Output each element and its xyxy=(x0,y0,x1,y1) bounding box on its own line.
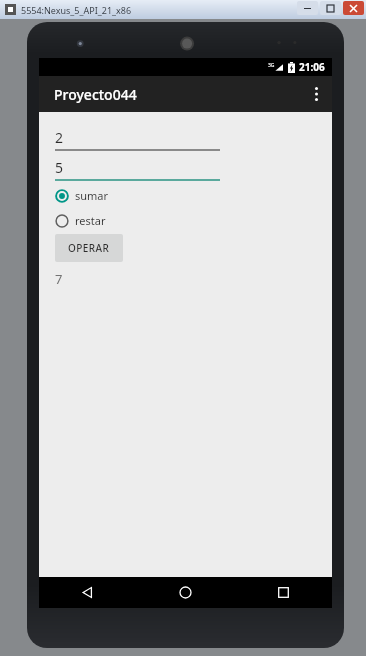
staticText: restar xyxy=(75,213,106,228)
button[interactable]: More options xyxy=(300,76,332,112)
staticText: 5554:Nexus_5_API_21_x86 xyxy=(21,4,132,16)
staticText: OPERAR xyxy=(68,241,110,255)
button[interactable]: Back xyxy=(39,577,136,608)
button[interactable]: OPERAR xyxy=(55,234,123,262)
staticText: 3G xyxy=(268,62,275,69)
button[interactable]: sumar xyxy=(55,186,109,205)
button[interactable]: Home xyxy=(136,577,234,608)
button[interactable]: restar xyxy=(55,211,106,230)
button[interactable]: Recent apps xyxy=(234,577,332,608)
button[interactable]: 5 xyxy=(55,158,220,181)
button[interactable] xyxy=(320,1,341,15)
staticText: 5 xyxy=(55,158,64,177)
button[interactable] xyxy=(343,1,364,15)
staticText: sumar xyxy=(75,188,109,203)
staticText: 7 xyxy=(55,270,63,288)
button[interactable] xyxy=(297,1,318,15)
staticText: Proyecto044 xyxy=(54,85,137,104)
staticText: 21:06 xyxy=(299,60,325,74)
staticText: 2 xyxy=(55,128,64,147)
button[interactable]: 2 xyxy=(55,128,220,151)
